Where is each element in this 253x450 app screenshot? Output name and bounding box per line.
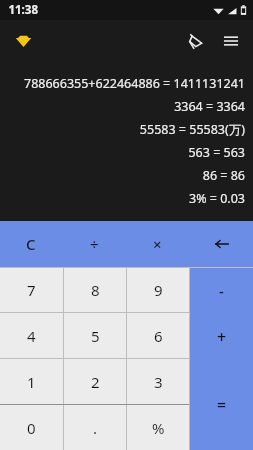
button[interactable]: 2 [64, 359, 126, 404]
button[interactable]: = [190, 360, 253, 450]
button[interactable]: 6 [127, 313, 189, 358]
staticText: 9 [154, 280, 163, 300]
button[interactable]: 7 [0, 268, 63, 312]
staticText: 3 [154, 372, 163, 392]
staticText: - [219, 281, 224, 301]
staticText: 2 [91, 372, 100, 392]
button[interactable]: - [190, 268, 253, 313]
staticText: 4 [27, 326, 36, 346]
button[interactable]: 3 [127, 359, 189, 404]
staticText: × [153, 234, 162, 254]
button[interactable]: 4 [0, 313, 63, 358]
button[interactable]: ÷ [63, 221, 125, 267]
button[interactable]: 8 [64, 268, 126, 312]
staticText: C [26, 234, 36, 254]
button[interactable]: 9 [127, 268, 189, 312]
staticText: 6 [154, 326, 163, 346]
button[interactable]: 1 [0, 359, 63, 404]
staticText: ÷ [90, 234, 99, 254]
staticText: 5 [91, 326, 100, 346]
staticText: % [152, 418, 165, 438]
button[interactable]: + [190, 314, 253, 359]
staticText: 86 = 86 [202, 167, 245, 184]
button[interactable]: Notifications [177, 23, 213, 59]
staticText: 788666355+622464886 = 1411131241 [23, 75, 245, 92]
staticText: 8 [91, 280, 100, 300]
button[interactable]: × [126, 221, 189, 267]
staticText: 1 [27, 372, 36, 392]
button[interactable]: Premium [6, 24, 40, 58]
staticText: = [217, 394, 227, 416]
button[interactable]: 0 [0, 405, 63, 450]
staticText: 3% = 0.03 [189, 190, 245, 207]
button[interactable]: . [64, 405, 126, 450]
staticText: 55583 = 55583(万) [139, 121, 245, 138]
staticText: 7 [27, 280, 36, 300]
staticText: 0 [27, 418, 36, 438]
staticText: . [93, 418, 98, 438]
staticText: 563 = 563 [188, 144, 245, 161]
button[interactable]: C [0, 221, 62, 267]
button[interactable]: 5 [64, 313, 126, 358]
button[interactable]: Menu [213, 23, 249, 59]
staticText: 3364 = 3364 [174, 98, 245, 115]
button[interactable]: % [127, 405, 189, 450]
staticText: 11:38 [8, 2, 38, 18]
button[interactable]: Backspace [190, 221, 253, 267]
staticText: + [217, 326, 227, 348]
